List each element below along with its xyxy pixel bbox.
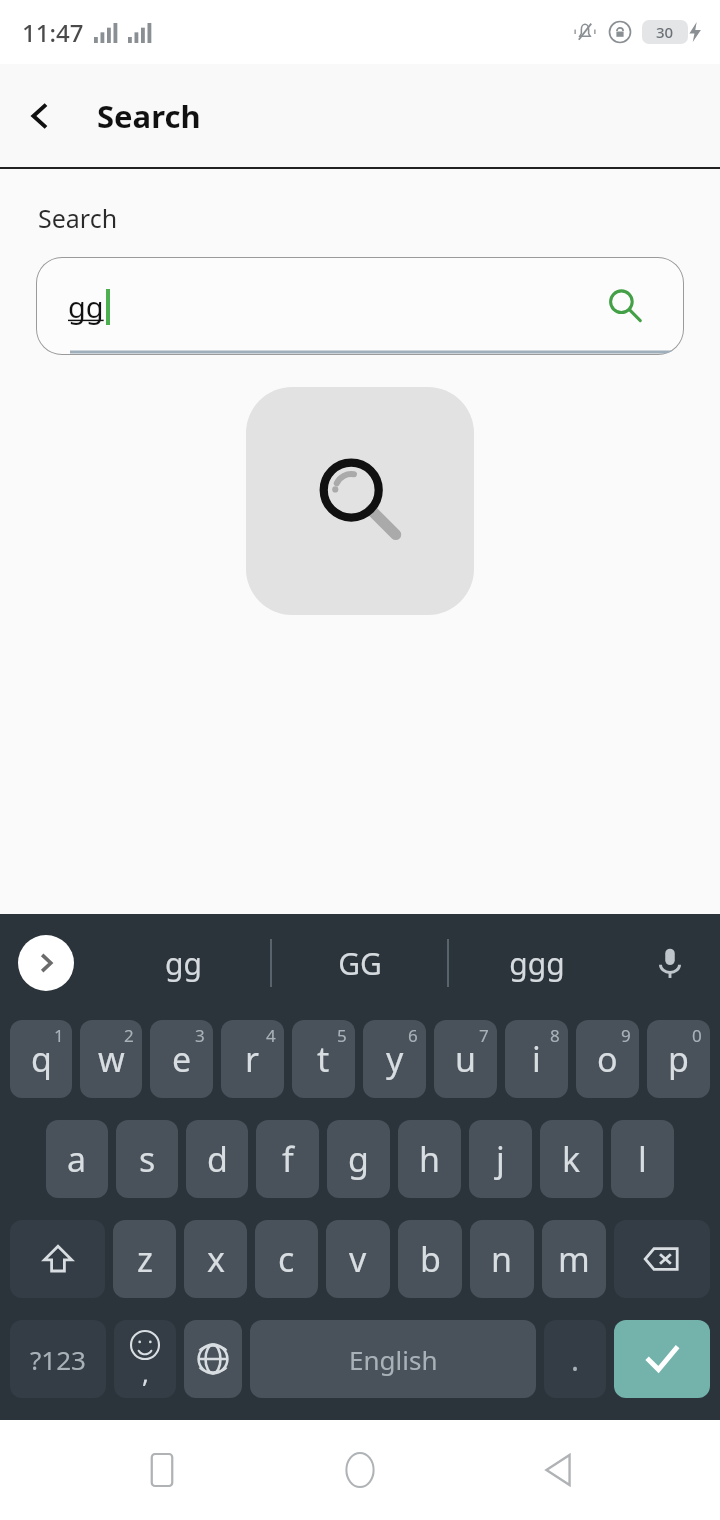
staticText: a — [67, 1136, 87, 1182]
staticText: c — [278, 1236, 295, 1282]
staticText: j — [496, 1136, 505, 1182]
button[interactable]: v — [326, 1220, 390, 1298]
button[interactable]: p — [647, 1020, 710, 1098]
staticText: Search — [97, 95, 201, 137]
staticText: r — [245, 1036, 260, 1082]
button[interactable]: b — [398, 1220, 462, 1298]
staticText: l — [638, 1136, 647, 1182]
staticText: 6 — [408, 1024, 418, 1047]
button[interactable]: GG — [272, 914, 447, 1012]
button[interactable]: Emoji — [114, 1320, 176, 1398]
staticText: Search — [38, 201, 118, 235]
button[interactable]: y — [363, 1020, 426, 1098]
button[interactable]: n — [470, 1220, 534, 1298]
button[interactable]: h — [398, 1120, 461, 1198]
staticText: . — [571, 1339, 580, 1380]
button[interactable]: Recents — [126, 1434, 198, 1506]
button[interactable]: gg — [36, 257, 684, 355]
staticText: 4 — [266, 1024, 276, 1047]
staticText: 2 — [124, 1024, 134, 1047]
button[interactable]: o — [576, 1020, 639, 1098]
button[interactable]: . — [544, 1320, 606, 1398]
button[interactable]: f — [256, 1120, 319, 1198]
staticText: z — [137, 1236, 153, 1282]
staticText: v — [349, 1236, 367, 1282]
button[interactable]: c — [255, 1220, 318, 1298]
staticText: English — [349, 1342, 438, 1377]
staticText: ?123 — [30, 1342, 86, 1377]
staticText: 3 — [195, 1024, 205, 1047]
button[interactable]: gg — [96, 914, 270, 1012]
button[interactable]: ggg — [449, 914, 624, 1012]
staticText: k — [562, 1136, 581, 1182]
button[interactable]: j — [469, 1120, 532, 1198]
button[interactable]: a — [46, 1120, 108, 1198]
staticText: x — [207, 1236, 225, 1282]
button[interactable]: w — [80, 1020, 142, 1098]
staticText: g — [348, 1136, 369, 1182]
button[interactable]: g — [327, 1120, 390, 1198]
button[interactable]: Shift — [10, 1220, 105, 1298]
staticText: , — [142, 1355, 149, 1390]
button[interactable]: u — [434, 1020, 497, 1098]
button[interactable]: s — [116, 1120, 178, 1198]
staticText: p — [668, 1036, 689, 1082]
staticText: 7 — [479, 1024, 489, 1047]
staticText: i — [532, 1036, 541, 1082]
staticText: 1 — [54, 1024, 64, 1047]
staticText: y — [386, 1036, 404, 1082]
staticText: 8 — [550, 1024, 560, 1047]
staticText: f — [282, 1136, 294, 1182]
staticText: u — [455, 1036, 477, 1082]
button[interactable]: Back — [12, 88, 68, 144]
button[interactable]: Back — [522, 1434, 594, 1506]
button[interactable]: ?123 — [10, 1320, 106, 1398]
button[interactable]: e — [150, 1020, 213, 1098]
button[interactable]: i — [505, 1020, 568, 1098]
button[interactable]: Enter — [614, 1320, 710, 1398]
button[interactable]: m — [542, 1220, 606, 1298]
button[interactable]: Home — [324, 1434, 396, 1506]
staticText: e — [172, 1036, 192, 1082]
button[interactable]: Backspace — [614, 1220, 710, 1298]
button[interactable]: q — [10, 1020, 72, 1098]
staticText: 0 — [692, 1024, 702, 1047]
button[interactable]: t — [292, 1020, 355, 1098]
button[interactable]: l — [611, 1120, 674, 1198]
staticText: h — [419, 1136, 441, 1182]
button[interactable]: English — [250, 1320, 536, 1398]
button[interactable]: Voice input — [644, 937, 696, 989]
staticText: gg — [68, 287, 104, 326]
button[interactable]: Change language — [184, 1320, 242, 1398]
button[interactable]: More suggestions — [18, 935, 74, 991]
staticText: 11:47 — [22, 16, 84, 49]
staticText: s — [139, 1136, 156, 1182]
staticText: n — [491, 1236, 513, 1282]
staticText: 5 — [337, 1024, 347, 1047]
staticText: gg — [165, 943, 202, 984]
button[interactable]: r — [221, 1020, 284, 1098]
button[interactable]: x — [184, 1220, 247, 1298]
staticText: b — [420, 1236, 441, 1282]
button[interactable]: z — [113, 1220, 176, 1298]
staticText: t — [317, 1036, 330, 1082]
staticText: d — [207, 1136, 228, 1182]
staticText: ggg — [509, 943, 565, 984]
button[interactable]: d — [186, 1120, 248, 1198]
staticText: q — [31, 1036, 52, 1082]
staticText: GG — [338, 943, 382, 984]
staticText: 9 — [621, 1024, 631, 1047]
staticText: o — [597, 1036, 618, 1082]
staticText: w — [98, 1036, 125, 1082]
staticText: m — [558, 1236, 590, 1282]
button[interactable]: Search — [604, 285, 646, 327]
button[interactable]: k — [540, 1120, 603, 1198]
staticText: 30 — [656, 22, 674, 42]
